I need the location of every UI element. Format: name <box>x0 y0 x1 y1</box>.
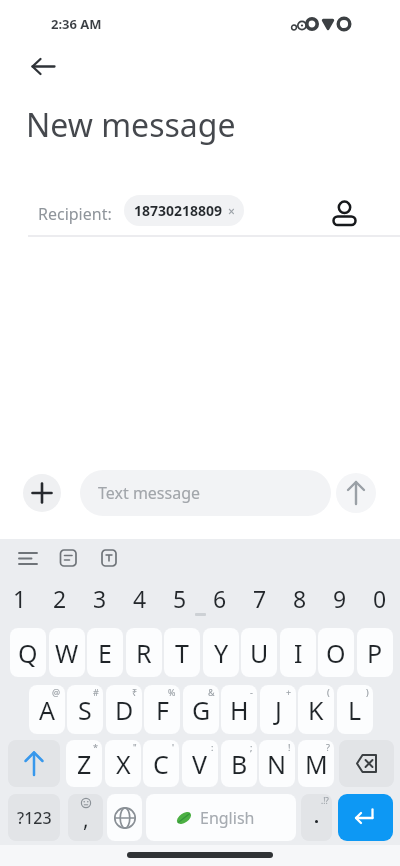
staticText: W <box>55 636 79 670</box>
button[interactable] <box>96 545 122 571</box>
staticText: C <box>153 747 169 781</box>
staticText: L <box>348 693 362 727</box>
staticText: H <box>230 693 249 727</box>
staticText: ?123 <box>17 807 52 829</box>
staticText: N <box>267 747 287 781</box>
button[interactable] <box>338 794 393 841</box>
button[interactable]: O <box>318 628 354 677</box>
staticText: A <box>39 693 55 727</box>
button[interactable]: ?123 <box>8 794 60 841</box>
staticText: Y <box>214 636 229 670</box>
button[interactable] <box>55 545 81 571</box>
button[interactable]: 8 <box>280 578 320 618</box>
button[interactable]: , <box>68 794 103 841</box>
button[interactable]: Text message <box>80 470 331 516</box>
staticText: .!? <box>321 795 329 806</box>
staticText: 4 <box>133 583 147 614</box>
button[interactable]: L <box>337 685 373 734</box>
staticText: 2:36 AM <box>51 15 102 33</box>
staticText: Z <box>77 747 92 781</box>
staticText: I <box>294 636 303 670</box>
button[interactable] <box>8 740 60 787</box>
staticText: New message <box>26 103 236 147</box>
staticText: : <box>211 741 214 753</box>
staticText: S <box>78 693 92 727</box>
button[interactable]: 3 <box>80 578 120 618</box>
button[interactable]: Y <box>203 628 239 677</box>
staticText: ( <box>327 686 330 698</box>
button[interactable]: 6 <box>200 578 240 618</box>
button[interactable]: P <box>357 628 393 677</box>
button[interactable]: B <box>221 740 257 787</box>
button[interactable]: 4 <box>120 578 160 618</box>
staticText: E <box>98 636 112 670</box>
staticText: 6 <box>213 583 227 614</box>
button[interactable] <box>339 740 394 787</box>
button[interactable]: S <box>67 685 103 734</box>
button[interactable]: English <box>146 794 296 841</box>
staticText: " <box>133 741 137 753</box>
staticText: 7 <box>253 583 267 614</box>
button[interactable] <box>20 52 64 82</box>
staticText: @ <box>52 686 61 698</box>
button[interactable]: N <box>259 740 295 787</box>
staticText: ? <box>326 741 330 753</box>
button[interactable]: Q <box>10 628 46 677</box>
button[interactable]: H <box>221 685 257 734</box>
button[interactable]: X <box>105 740 141 787</box>
staticText: R <box>136 636 152 670</box>
staticText: M <box>305 747 328 781</box>
staticText: D <box>115 693 134 727</box>
button[interactable]: E <box>87 628 123 677</box>
staticText: * <box>93 741 98 753</box>
button[interactable]: 9 <box>320 578 360 618</box>
staticText: 2 <box>53 583 67 614</box>
button[interactable]: I <box>280 628 316 677</box>
button[interactable]: U <box>241 628 277 677</box>
button[interactable]: W <box>49 628 85 677</box>
button[interactable] <box>330 192 362 230</box>
button[interactable] <box>127 852 273 858</box>
staticText: ) <box>366 686 369 698</box>
staticText: English <box>200 807 255 829</box>
staticText: % <box>168 686 176 698</box>
button[interactable]: 18730218809 <box>124 195 244 226</box>
staticText: B <box>231 747 248 781</box>
button[interactable]: F <box>144 685 180 734</box>
button[interactable]: T <box>164 628 200 677</box>
staticText: 9 <box>333 583 347 614</box>
staticText: × <box>228 203 235 219</box>
button[interactable]: C <box>143 740 179 787</box>
staticText: X <box>116 747 131 781</box>
staticText: O <box>326 636 346 670</box>
button[interactable]: R <box>126 628 162 677</box>
staticText: P <box>367 636 383 670</box>
button[interactable] <box>12 545 44 571</box>
button[interactable]: V <box>182 740 218 787</box>
button[interactable] <box>336 473 376 513</box>
button[interactable]: .!? <box>301 794 332 841</box>
staticText: - <box>250 686 253 698</box>
staticText: , <box>83 805 89 834</box>
button[interactable]: J <box>260 685 296 734</box>
button[interactable]: 5 <box>160 578 200 618</box>
button[interactable]: A <box>29 685 65 734</box>
button[interactable]: 2 <box>40 578 80 618</box>
staticText: 8 <box>293 583 307 614</box>
button[interactable]: 0 <box>360 578 400 618</box>
button[interactable]: K <box>298 685 334 734</box>
button[interactable]: G <box>183 685 219 734</box>
button[interactable]: D <box>106 685 142 734</box>
button[interactable]: M <box>298 740 334 787</box>
staticText: F <box>156 693 169 727</box>
button[interactable]: 1 <box>0 578 40 618</box>
button[interactable] <box>23 474 61 512</box>
button[interactable]: Z <box>66 740 102 787</box>
staticText: & <box>208 686 215 698</box>
staticText: V <box>192 747 208 781</box>
staticText: T <box>175 636 189 670</box>
button[interactable] <box>107 794 142 841</box>
staticText: 18730218809 <box>134 201 223 220</box>
staticText: Text message <box>98 482 201 504</box>
button[interactable]: 7 <box>240 578 280 618</box>
